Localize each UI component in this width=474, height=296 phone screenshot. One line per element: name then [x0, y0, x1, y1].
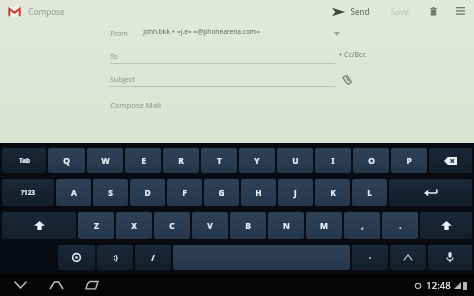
- staticText: 12:48: [426, 279, 451, 292]
- staticText: Subject: [110, 74, 135, 84]
- button[interactable]: Z: [78, 212, 114, 239]
- staticText: E: [141, 155, 146, 166]
- staticText: ,: [361, 220, 364, 231]
- button[interactable]: ?123: [2, 179, 54, 206]
- button[interactable]: J: [278, 179, 313, 206]
- staticText: O: [368, 155, 375, 166]
- button[interactable]: H: [241, 179, 276, 206]
- button[interactable]: gear: [58, 245, 95, 270]
- staticText: ?123: [21, 188, 35, 197]
- button[interactable]: Recent apps: [82, 275, 102, 295]
- button[interactable]: To: [0, 45, 474, 68]
- staticText: M: [320, 220, 328, 231]
- staticText: Q: [63, 155, 70, 166]
- staticText: F: [182, 187, 187, 198]
- button[interactable]: U: [277, 148, 313, 173]
- button[interactable]: Subject: [0, 68, 474, 91]
- staticText: Tab: [19, 156, 30, 165]
- button[interactable]: shift: [420, 212, 472, 239]
- staticText: To: [110, 51, 118, 61]
- button[interactable]: enter: [389, 179, 472, 206]
- staticText: From: [110, 28, 128, 38]
- button[interactable]: ,: [344, 212, 380, 239]
- staticText: Compose Mail: [110, 100, 161, 110]
- button[interactable]: K: [315, 179, 350, 206]
- button[interactable]: C: [154, 212, 190, 239]
- button[interactable]: G: [204, 179, 239, 206]
- staticText: Compose: [28, 6, 65, 17]
- button[interactable]: /: [135, 245, 171, 270]
- button[interactable]: I: [315, 148, 351, 173]
- button[interactable]: S: [93, 179, 128, 206]
- button[interactable]: Compose: [6, 6, 67, 17]
- button[interactable]: mic: [428, 245, 472, 270]
- staticText: G: [218, 187, 225, 198]
- staticText: C: [169, 220, 175, 231]
- staticText: john.bkk + =j.e= =@phonearena.com=: [143, 27, 260, 36]
- staticText: V: [207, 220, 213, 231]
- button[interactable]: L: [352, 179, 387, 206]
- staticText: S: [108, 187, 113, 198]
- button[interactable]: T: [201, 148, 237, 173]
- button[interactable]: M: [306, 212, 342, 239]
- button[interactable]: More options: [452, 3, 468, 19]
- button[interactable]: P: [391, 148, 427, 173]
- button[interactable]: caret: [390, 245, 426, 270]
- button[interactable]: N: [268, 212, 304, 239]
- button[interactable]: B: [230, 212, 266, 239]
- button[interactable]: Save: [387, 6, 413, 17]
- staticText: Send: [350, 6, 370, 17]
- staticText: P: [406, 155, 412, 166]
- button[interactable]: R: [163, 148, 199, 173]
- staticText: + Cc/Bcc: [338, 50, 366, 60]
- button[interactable]: W: [87, 148, 123, 173]
- staticText: .: [399, 220, 402, 231]
- staticText: N: [283, 220, 290, 231]
- staticText: A: [71, 187, 77, 198]
- button[interactable]: Send: [329, 6, 373, 17]
- button[interactable]: V: [192, 212, 228, 239]
- staticText: H: [255, 187, 262, 198]
- button[interactable]: Tab: [2, 148, 46, 173]
- button[interactable]: From: [0, 22, 474, 45]
- staticText: T: [217, 155, 222, 166]
- staticText: X: [131, 220, 137, 231]
- button[interactable]: Discard: [425, 3, 441, 19]
- staticText: Save: [391, 6, 409, 17]
- button[interactable]: bksp: [429, 148, 472, 173]
- button[interactable]: Hide keyboard: [10, 275, 30, 295]
- button[interactable]: Q: [48, 148, 85, 173]
- button[interactable]: Home: [46, 275, 66, 295]
- staticText: D: [144, 187, 151, 198]
- button[interactable]: + Cc/Bcc: [338, 50, 366, 60]
- button[interactable]: E: [125, 148, 161, 173]
- button[interactable]: F: [167, 179, 202, 206]
- staticText: W: [101, 155, 110, 166]
- button[interactable]: Compose Mail: [110, 100, 474, 110]
- button[interactable]: dot: [352, 245, 388, 270]
- staticText: I: [331, 155, 335, 166]
- staticText: R: [178, 155, 184, 166]
- staticText: B: [245, 220, 251, 231]
- button[interactable]: X: [116, 212, 152, 239]
- staticText: K: [330, 187, 336, 198]
- button[interactable]: Attach file: [340, 72, 354, 86]
- button[interactable]: key: [173, 245, 350, 270]
- staticText: J: [294, 187, 297, 198]
- button[interactable]: A: [56, 179, 91, 206]
- staticText: /: [151, 252, 155, 263]
- staticText: U: [292, 155, 299, 166]
- staticText: L: [367, 187, 372, 198]
- button[interactable]: O: [353, 148, 389, 173]
- staticText: Z: [94, 220, 99, 231]
- staticText: Y: [254, 155, 260, 166]
- button[interactable]: Y: [239, 148, 275, 173]
- button[interactable]: .: [382, 212, 418, 239]
- button[interactable]: :): [97, 245, 133, 270]
- staticText: :): [113, 253, 118, 262]
- button[interactable]: D: [130, 179, 165, 206]
- button[interactable]: shift: [2, 212, 76, 239]
